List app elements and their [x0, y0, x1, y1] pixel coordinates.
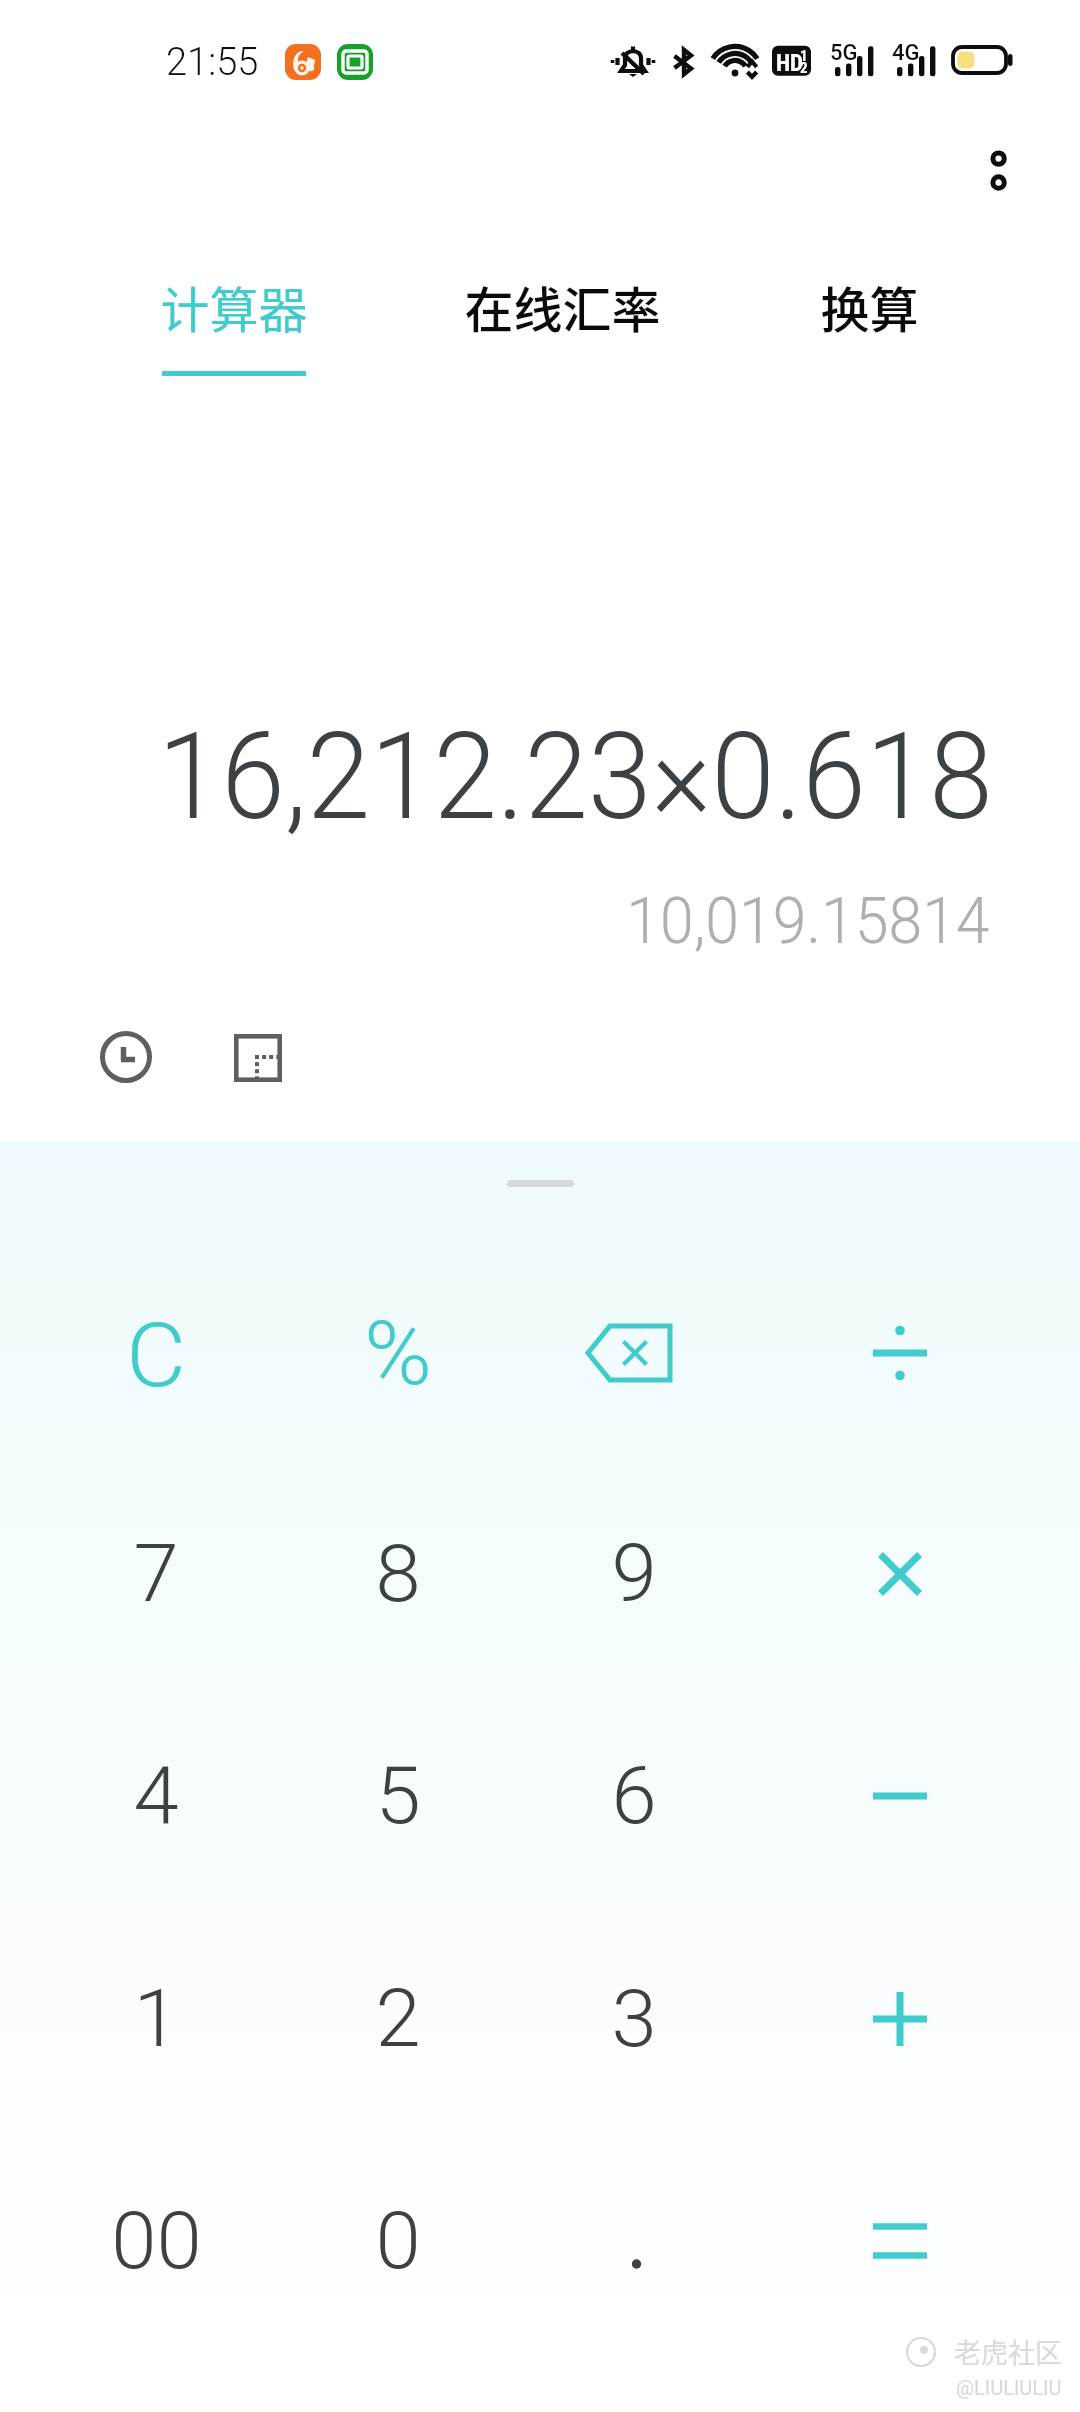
button[interactable]: 9 [519, 1469, 749, 1679]
staticText: C [126, 1303, 186, 1407]
button[interactable]: 换算 [719, 271, 1019, 391]
button[interactable]: 1 [41, 1914, 271, 2124]
staticText: 2 [375, 1973, 421, 2065]
staticText: 21:55 [166, 40, 259, 85]
button[interactable]: C [41, 1250, 271, 1460]
button[interactable]: 8 [283, 1469, 513, 1679]
button[interactable]: Divide [785, 1248, 1015, 1458]
button[interactable]: History [76, 1007, 176, 1107]
button[interactable]: % [283, 1248, 513, 1458]
staticText: 7 [133, 1528, 179, 1620]
staticText: 计算器 [160, 271, 308, 342]
button[interactable]: 3 [519, 1914, 749, 2124]
button[interactable]: 00 [41, 2136, 271, 2346]
button[interactable]: 6 [519, 1691, 749, 1901]
button[interactable]: Plus [785, 1914, 1015, 2124]
staticText: 老虎社区 [954, 2332, 1062, 2371]
button[interactable]: 5 [283, 1691, 513, 1901]
button[interactable]: 计算器 [84, 271, 384, 391]
button[interactable]: 2 [283, 1914, 513, 2124]
button[interactable]: Equals [785, 2136, 1015, 2346]
staticText: 10,019.15814 [626, 883, 990, 959]
staticText: 2 [800, 59, 808, 77]
staticText: 5 [375, 1750, 421, 1842]
staticText: 4G [892, 40, 920, 66]
staticText: 1 [133, 1973, 179, 2065]
button[interactable]: 在线汇率 [412, 271, 712, 391]
staticText: 1 [800, 47, 808, 65]
button[interactable]: 4 [41, 1691, 271, 1901]
staticText: 16,212.23×0.618 [158, 706, 993, 848]
staticText: 4 [133, 1750, 179, 1842]
staticText: 5G [830, 40, 858, 66]
button[interactable]: More options [944, 104, 1054, 214]
staticText: 3 [611, 1973, 657, 2065]
button[interactable]: Minus [785, 1691, 1015, 1901]
staticText: @LIULIULIU [956, 2376, 1062, 2399]
staticText: % [363, 1301, 432, 1405]
button[interactable]: Decimal point [519, 2136, 749, 2346]
staticText: 00 [111, 2195, 202, 2287]
staticText: 8 [375, 1528, 421, 1620]
button[interactable]: Multiply [785, 1469, 1015, 1679]
staticText: 在线汇率 [464, 271, 661, 342]
button[interactable]: Backspace [514, 1248, 744, 1458]
button[interactable]: Memory [208, 1007, 308, 1107]
staticText: 0 [375, 2195, 421, 2287]
staticText: 9 [611, 1528, 657, 1620]
button[interactable]: 7 [41, 1469, 271, 1679]
staticText: 6 [611, 1750, 657, 1842]
staticText: HD [776, 50, 804, 77]
button[interactable]: 0 [283, 2136, 513, 2346]
staticText: 换算 [820, 271, 919, 342]
